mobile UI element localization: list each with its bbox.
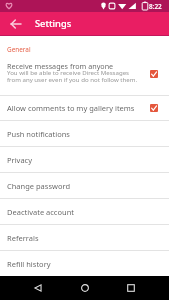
staticText: 8:22 xyxy=(149,2,162,11)
button[interactable]: Back xyxy=(5,12,26,35)
staticText: Receive messages from anyone xyxy=(7,61,114,71)
staticText: Referrals xyxy=(7,233,39,243)
staticText: Deactivate account xyxy=(7,207,74,217)
staticText: Allow comments to my gallery items xyxy=(7,103,149,113)
button[interactable]: Referrals xyxy=(0,225,169,250)
staticText: Refill history xyxy=(7,259,51,269)
button[interactable]: Privacy xyxy=(0,147,169,172)
button[interactable]: Refill history xyxy=(0,251,169,276)
button[interactable]: Deactivate account xyxy=(0,199,169,224)
button[interactable]: Receive messages from anyone xyxy=(0,61,169,86)
button[interactable]: Push notifications xyxy=(0,121,169,146)
staticText: Push notifications xyxy=(7,129,70,139)
staticText: Change password xyxy=(7,181,71,191)
staticText: You will be able to receive Direct Messa… xyxy=(7,68,138,83)
button[interactable]: Change password xyxy=(0,173,169,198)
staticText: Settings xyxy=(35,17,72,30)
button[interactable]: Home xyxy=(65,276,105,300)
button[interactable]: Allow comments to my gallery items xyxy=(0,96,169,120)
button[interactable]: Back xyxy=(18,276,58,300)
staticText: Privacy xyxy=(7,155,33,165)
staticText: General xyxy=(7,45,31,54)
button[interactable]: Recent apps xyxy=(111,276,151,300)
